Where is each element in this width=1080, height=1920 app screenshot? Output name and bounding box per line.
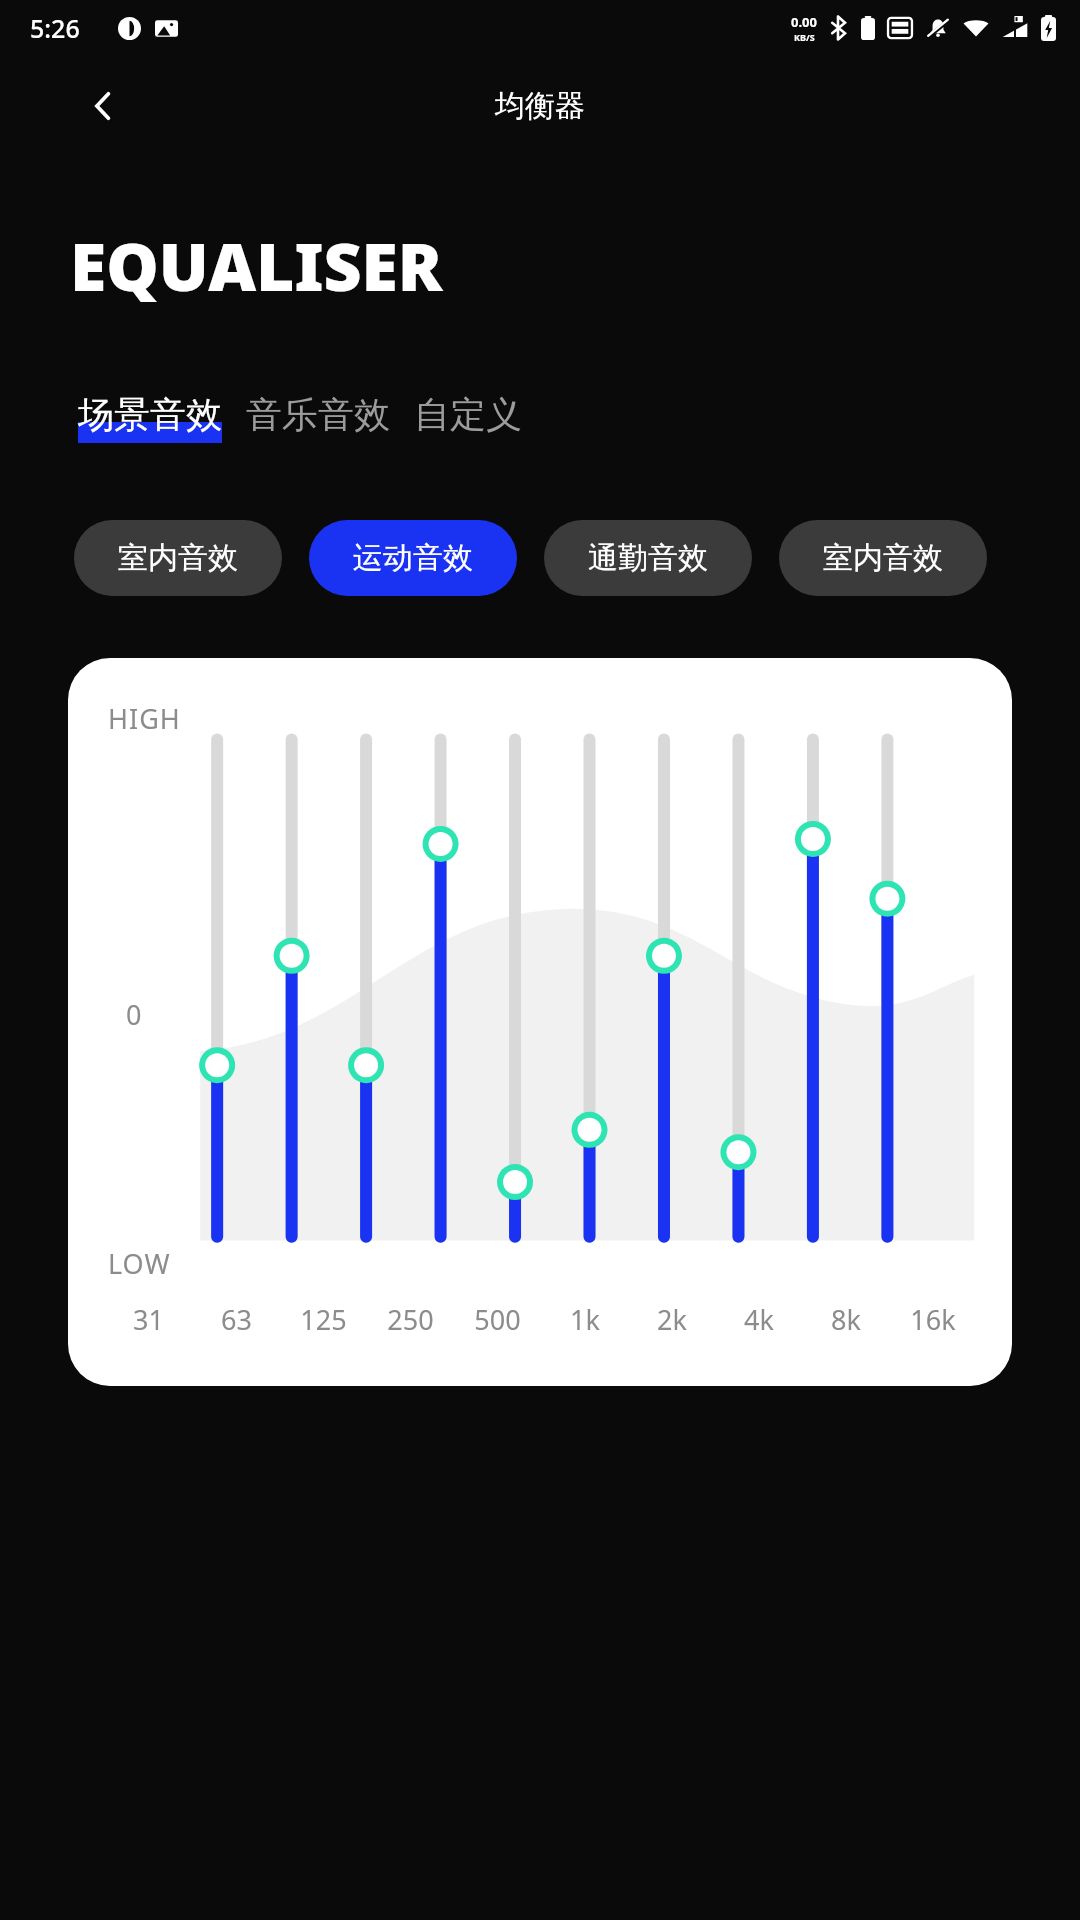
- button[interactable]: 音乐音效: [246, 392, 390, 445]
- staticText: 4k: [744, 1301, 774, 1338]
- staticText: 0: [126, 996, 142, 1033]
- staticText: 250: [387, 1301, 434, 1338]
- staticText: 均衡器: [495, 87, 585, 125]
- staticText: 8k: [831, 1301, 861, 1338]
- staticText: 125: [300, 1301, 347, 1338]
- staticText: 1k: [570, 1301, 600, 1338]
- staticText: 0.00: [791, 13, 817, 31]
- staticText: 室内音效: [823, 539, 943, 577]
- staticText: 自定义: [414, 392, 522, 437]
- staticText: 16k: [910, 1301, 956, 1338]
- staticText: 5:26: [30, 11, 80, 45]
- staticText: 音乐音效: [246, 392, 390, 437]
- staticText: LOW: [108, 1245, 171, 1282]
- button[interactable]: 运动音效: [309, 520, 517, 596]
- button[interactable]: 室内音效: [779, 520, 987, 596]
- staticText: 31: [133, 1301, 164, 1338]
- staticText: 通勤音效: [588, 539, 708, 577]
- button[interactable]: 场景音效: [78, 392, 222, 445]
- staticText: EQUALISER: [70, 220, 443, 310]
- button[interactable]: 通勤音效: [544, 520, 752, 596]
- staticText: 500: [474, 1301, 521, 1338]
- staticText: 63: [221, 1301, 252, 1338]
- staticText: HIGH: [108, 700, 181, 737]
- staticText: 室内音效: [118, 539, 238, 577]
- staticText: 2k: [657, 1301, 687, 1338]
- button[interactable]: 室内音效: [74, 520, 282, 596]
- staticText: KB/S: [794, 31, 815, 43]
- button[interactable]: 自定义: [414, 392, 522, 445]
- staticText: 场景音效: [78, 392, 222, 437]
- staticText: 运动音效: [353, 539, 473, 577]
- button[interactable]: Back: [72, 75, 134, 137]
